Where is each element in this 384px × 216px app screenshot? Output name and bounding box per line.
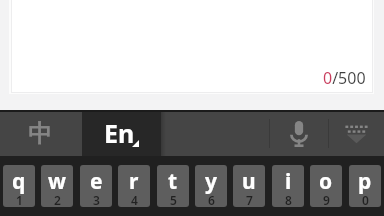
button[interactable]: Message input field (12, 0, 372, 92)
button[interactable]: r (118, 165, 150, 207)
staticText: 4 (131, 192, 138, 207)
staticText: i (285, 167, 292, 196)
staticText: w (48, 167, 66, 196)
button[interactable]: u (233, 165, 265, 207)
staticText: u (242, 167, 256, 196)
button[interactable]: t (157, 165, 189, 207)
staticText: p (358, 167, 372, 196)
staticText: 8 (285, 192, 292, 207)
staticText: 3 (93, 192, 100, 207)
button[interactable]: p (349, 165, 381, 207)
staticText: 2 (54, 192, 61, 207)
staticText: 0/500 (323, 67, 366, 89)
staticText: 中 (28, 119, 52, 149)
staticText: t (168, 167, 178, 196)
staticText: 6 (208, 192, 215, 207)
staticText: 5 (170, 192, 177, 207)
staticText: 0 (362, 192, 369, 207)
button[interactable]: w (41, 165, 73, 207)
button[interactable]: Hide keyboard (329, 112, 384, 156)
staticText: q (12, 167, 26, 196)
staticText: y (205, 167, 217, 196)
button[interactable]: 中 (0, 112, 82, 156)
staticText: r (129, 167, 139, 196)
button[interactable]: e (80, 165, 112, 207)
button[interactable]: q (3, 165, 35, 207)
button[interactable]: y (195, 165, 227, 207)
staticText: 9 (323, 192, 330, 207)
button[interactable]: En (82, 112, 161, 156)
staticText: 1 (16, 192, 23, 207)
staticText: e (90, 167, 103, 196)
button[interactable]: Voice input (270, 112, 328, 156)
staticText: En (104, 116, 135, 150)
button[interactable]: o (310, 165, 342, 207)
staticText: o (319, 167, 333, 196)
staticText: 7 (246, 192, 253, 207)
button[interactable]: i (272, 165, 304, 207)
